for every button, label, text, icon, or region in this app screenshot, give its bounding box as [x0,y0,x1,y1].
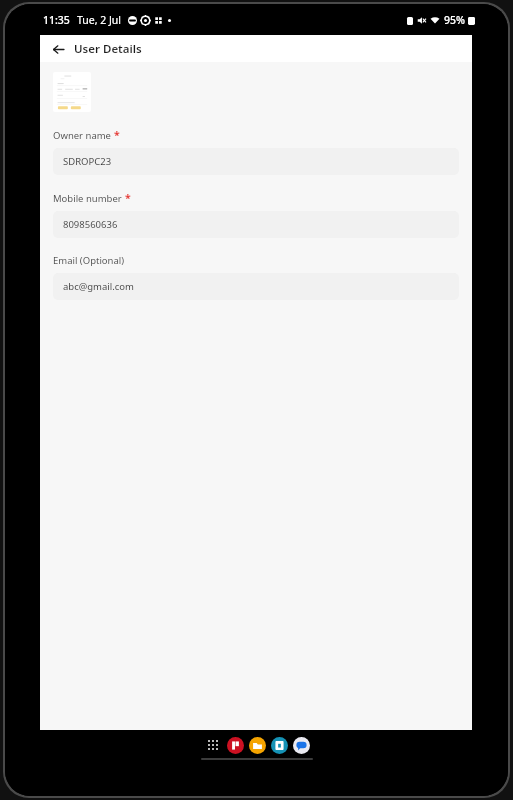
button[interactable]: SDROPC23 [53,148,459,175]
staticText: Tue, 2 Jul [77,13,122,27]
button[interactable]: Document thumbnail [53,72,91,112]
staticText: * [125,191,131,205]
staticText: 95% [444,13,465,27]
staticText: SDROPC23 [63,155,112,168]
staticText: 8098560636 [63,218,118,231]
button[interactable]: Messages [293,737,310,754]
button[interactable]: Flipboard [227,737,244,754]
staticText: 11:35 [43,13,70,27]
staticText: abc@gmail.com [63,280,134,293]
button[interactable]: All apps [203,735,223,755]
button[interactable]: Calendar [271,737,288,754]
staticText: * [114,128,120,142]
staticText: User Details [74,41,142,57]
button[interactable]: abc@gmail.com [53,273,459,300]
staticText: Owner name [53,129,111,142]
button[interactable]: 8098560636 [53,211,459,238]
button[interactable]: Back [47,38,69,60]
button[interactable]: Files [249,737,266,754]
staticText: Email (Optional) [53,254,125,267]
staticText: Mobile number [53,192,122,205]
